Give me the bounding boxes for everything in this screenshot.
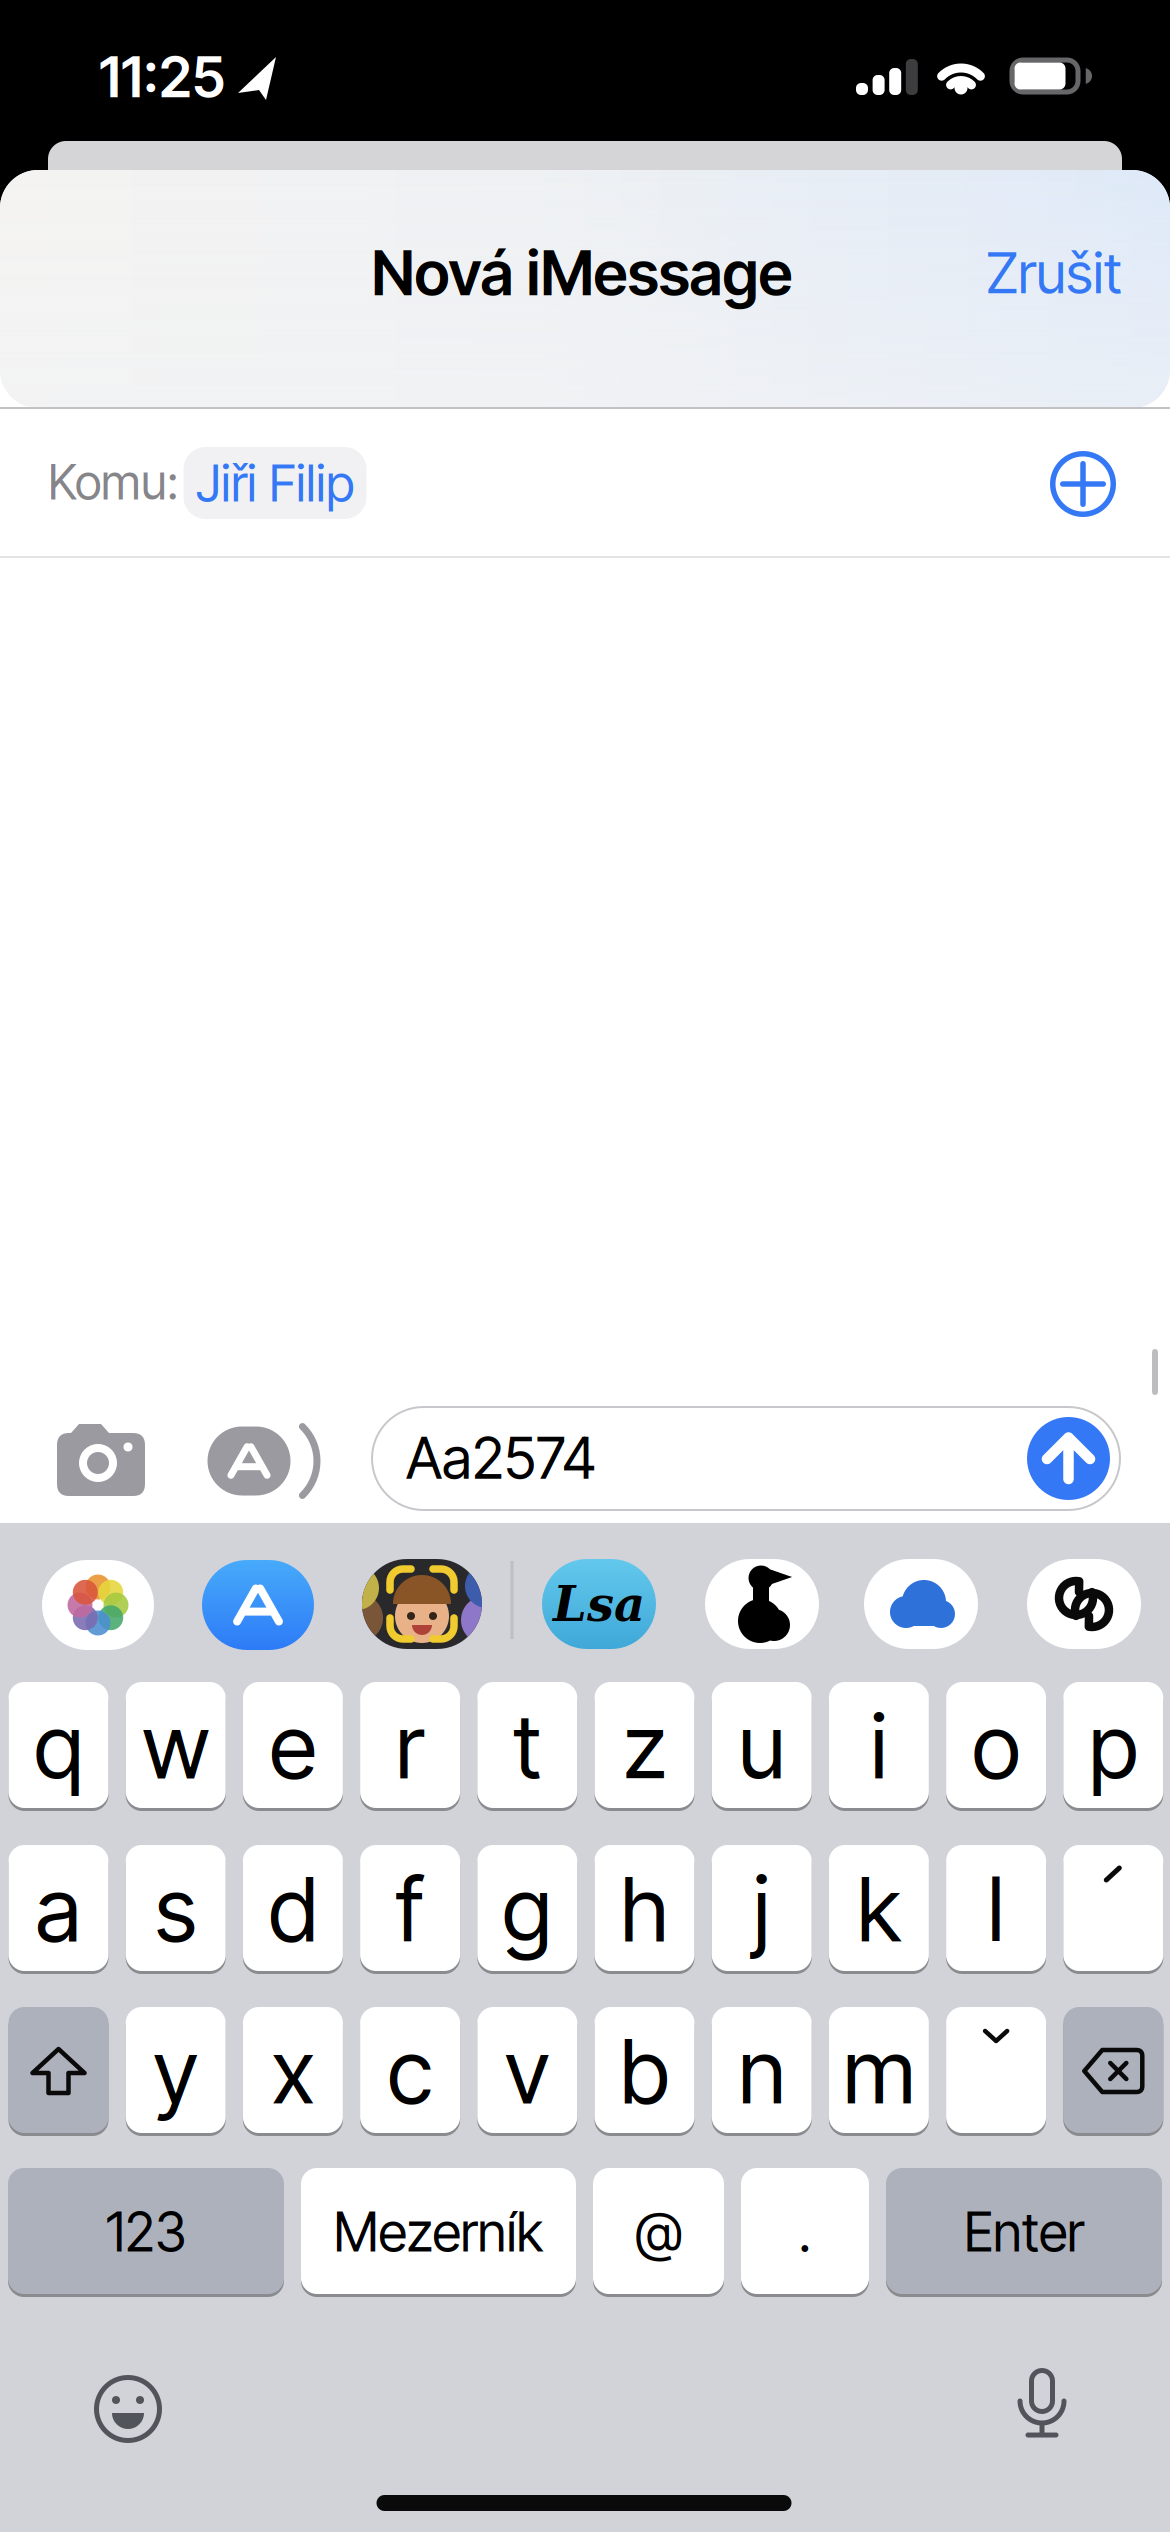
button[interactable]: x (243, 2006, 343, 2136)
button[interactable]: Zrušit (986, 239, 1122, 307)
button[interactable]: Aa2574 (371, 1406, 1121, 1511)
button[interactable]: k (829, 1844, 929, 1974)
staticText: Enter (964, 2200, 1084, 2264)
button[interactable]: u (712, 1681, 812, 1811)
staticText: q (34, 1693, 83, 1799)
button[interactable]: Diktování (1006, 2371, 1078, 2441)
staticText: a (35, 1856, 81, 1962)
button[interactable]: Memoji (362, 1559, 482, 1649)
staticText: t (513, 1693, 541, 1799)
button[interactable]: g (477, 1844, 577, 1974)
staticText: j (753, 1856, 770, 1962)
button[interactable]: Enter (886, 2167, 1162, 2297)
staticText: k (857, 1856, 901, 1962)
staticText: v (505, 2018, 550, 2124)
button[interactable]: o (946, 1681, 1046, 1811)
staticText: z (623, 1693, 666, 1799)
button[interactable]: Smazat (1063, 2006, 1163, 2136)
button[interactable]: l (946, 1844, 1046, 1974)
button[interactable]: . (741, 2167, 869, 2297)
button[interactable]: Jiři Filip (183, 447, 366, 519)
button[interactable]: v (477, 2006, 577, 2136)
button[interactable]: w (126, 1681, 226, 1811)
button[interactable]: Gucci (1027, 1559, 1141, 1649)
button[interactable]: Mezerník (301, 2167, 576, 2297)
staticText: h (620, 1856, 668, 1962)
staticText: u (738, 1693, 785, 1799)
button[interactable]: Fotoaparát (56, 1423, 146, 1497)
staticText: w (142, 1693, 209, 1799)
staticText: Jiři Filip (196, 452, 354, 514)
staticText: f (396, 1856, 424, 1962)
staticText: Nová iMessage (371, 236, 792, 310)
staticText: Lsa (553, 1576, 645, 1632)
staticText: . (798, 2200, 811, 2264)
staticText: s (155, 1856, 197, 1962)
staticText: Aa2574 (406, 1423, 596, 1493)
button[interactable]: d (243, 1844, 343, 1974)
button[interactable]: j (712, 1844, 812, 1974)
button[interactable]: b (594, 2006, 694, 2136)
button[interactable]: Caron (946, 2006, 1046, 2136)
staticText: r (396, 1693, 425, 1799)
button[interactable]: z (594, 1681, 694, 1811)
button[interactable]: t (477, 1681, 577, 1811)
button[interactable]: Lsa (542, 1559, 656, 1649)
button[interactable]: Fotky (42, 1560, 154, 1650)
staticText: 11:25 (99, 43, 225, 111)
staticText: p (1089, 1693, 1138, 1799)
staticText: x (271, 2018, 314, 2124)
button[interactable]: n (712, 2006, 812, 2136)
button[interactable]: q (8, 1681, 108, 1811)
staticText: m (843, 2018, 915, 2124)
button[interactable]: Emoji (92, 2373, 164, 2445)
staticText: y (153, 2018, 198, 2124)
button[interactable]: f (360, 1844, 460, 1974)
staticText: l (988, 1856, 1005, 1962)
button[interactable]: m (829, 2006, 929, 2136)
button[interactable]: Shift (8, 2006, 108, 2136)
button[interactable]: @ (593, 2167, 724, 2297)
button[interactable]: Duck (705, 1559, 819, 1649)
button[interactable]: h (594, 1844, 694, 1974)
staticText: n (738, 2018, 785, 2124)
button[interactable]: p (1063, 1681, 1163, 1811)
button[interactable]: i (829, 1681, 929, 1811)
button[interactable]: s (126, 1844, 226, 1974)
button[interactable]: c (360, 2006, 460, 2136)
staticText: Mezerník (333, 2200, 543, 2264)
button[interactable]: 123 (8, 2167, 284, 2297)
staticText: i (870, 1693, 887, 1799)
staticText: b (620, 2018, 669, 2124)
staticText: @ (635, 2200, 682, 2264)
staticText: Zrušit (986, 239, 1122, 307)
button[interactable]: y (126, 2006, 226, 2136)
button[interactable]: e (243, 1681, 343, 1811)
button[interactable]: a (8, 1844, 108, 1974)
staticText: Komu: (48, 453, 178, 511)
button[interactable]: Čárka (1063, 1844, 1163, 1974)
button[interactable]: App Store (202, 1560, 314, 1650)
button[interactable]: Přidat kontakt (1048, 449, 1118, 519)
staticText: e (269, 1693, 316, 1799)
button[interactable]: Odeslat (1027, 1417, 1110, 1500)
staticText: 123 (106, 2200, 186, 2264)
staticText: g (502, 1856, 552, 1962)
button[interactable]: OneDrive (864, 1559, 978, 1649)
button[interactable]: Aplikace (203, 1424, 323, 1498)
staticText: d (268, 1856, 317, 1962)
staticText: o (972, 1693, 1020, 1799)
button[interactable]: r (360, 1681, 460, 1811)
staticText: c (388, 2018, 433, 2124)
